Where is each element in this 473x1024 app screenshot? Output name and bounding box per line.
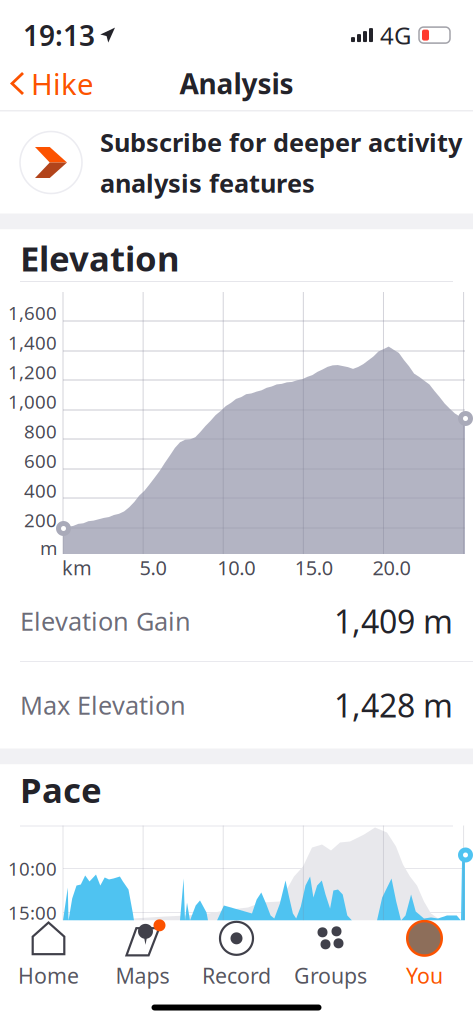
staticText: m: [40, 535, 57, 560]
button[interactable]: Max Elevation: [0, 662, 473, 748]
staticText: 20.0: [372, 554, 410, 581]
staticText: analysis features: [100, 166, 315, 200]
staticText: Max Elevation: [20, 688, 186, 722]
button[interactable]: Subscribe for deeper activity: [0, 111, 473, 213]
staticText: 19:13: [23, 16, 95, 54]
staticText: 200: [24, 508, 57, 532]
staticText: 600: [24, 448, 57, 473]
staticText: 1,400: [8, 330, 57, 355]
staticText: 15.0: [295, 554, 333, 581]
staticText: 800: [24, 419, 57, 444]
staticText: Maps: [115, 961, 169, 990]
staticText: 1,409 m: [334, 600, 453, 642]
staticText: Pace: [20, 766, 102, 812]
staticText: Home: [18, 961, 79, 990]
staticText: Subscribe for deeper activity: [100, 125, 462, 159]
staticText: Elevation: [20, 235, 180, 281]
button[interactable]: You: [377, 924, 471, 986]
staticText: You: [406, 961, 443, 990]
button[interactable]: Record: [189, 924, 283, 986]
button[interactable]: Home: [1, 924, 95, 986]
staticText: Record: [202, 961, 271, 990]
staticText: Analysis: [179, 65, 293, 102]
staticText: Hike: [31, 64, 94, 103]
staticText: 1,428 m: [334, 684, 453, 726]
staticText: 1,200: [8, 360, 57, 384]
staticText: Elevation Gain: [20, 604, 191, 638]
staticText: km: [62, 554, 92, 581]
button[interactable]: Hike: [0, 56, 108, 110]
staticText: Groups: [294, 961, 367, 990]
staticText: 1,600: [8, 300, 57, 325]
staticText: 5.0: [140, 554, 167, 581]
button[interactable]: Elevation Gain: [0, 581, 473, 662]
button[interactable]: Maps: [95, 924, 189, 986]
staticText: 4G: [380, 19, 411, 51]
button[interactable]: Groups: [283, 924, 377, 986]
staticText: 15:00: [8, 900, 57, 925]
staticText: 10:00: [8, 856, 57, 881]
staticText: 1,000: [8, 389, 57, 414]
staticText: 10.0: [217, 554, 255, 581]
staticText: 400: [24, 478, 57, 503]
